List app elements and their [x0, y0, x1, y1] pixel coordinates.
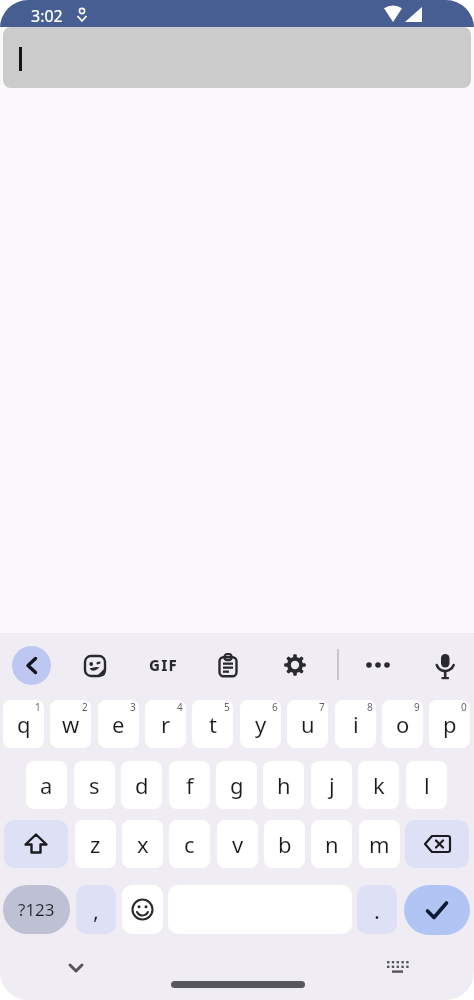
button[interactable] — [404, 885, 470, 935]
button[interactable] — [3, 27, 471, 88]
button[interactable] — [364, 653, 392, 677]
button[interactable]: f — [169, 761, 210, 809]
button[interactable]: p — [429, 700, 470, 748]
staticText: , — [93, 895, 99, 925]
staticText: 3 — [130, 700, 136, 714]
button[interactable]: i — [335, 700, 376, 748]
staticText: 7 — [319, 700, 325, 714]
button[interactable]: n — [311, 820, 352, 868]
staticText: z — [90, 829, 101, 859]
button[interactable]: o — [382, 700, 423, 748]
staticText: p — [443, 709, 457, 739]
button[interactable] — [58, 953, 94, 981]
button[interactable]: r — [145, 700, 186, 748]
staticText: GIF — [149, 655, 178, 675]
staticText: e — [112, 709, 125, 739]
staticText: v — [232, 829, 244, 859]
staticText: n — [325, 829, 339, 859]
button[interactable] — [216, 653, 240, 677]
staticText: 0 — [461, 700, 467, 714]
staticText: 1 — [35, 700, 41, 714]
button[interactable]: j — [311, 761, 352, 809]
button[interactable]: m — [359, 820, 400, 868]
staticText: t — [209, 709, 217, 739]
staticText: c — [184, 829, 195, 859]
button[interactable]: y — [240, 700, 281, 748]
staticText: 2 — [82, 700, 88, 714]
staticText: 3:02 — [31, 5, 63, 27]
staticText: 5 — [224, 700, 230, 714]
staticText: b — [278, 829, 292, 859]
button[interactable]: x — [122, 820, 163, 868]
staticText: 4 — [177, 700, 183, 714]
staticText: 6 — [272, 700, 278, 714]
staticText: y — [255, 709, 267, 739]
button[interactable]: d — [121, 761, 162, 809]
button[interactable]: z — [75, 820, 116, 868]
button[interactable]: q — [3, 700, 44, 748]
button[interactable]: l — [406, 761, 447, 809]
staticText: w — [62, 709, 80, 739]
staticText: r — [161, 709, 171, 739]
button[interactable]: b — [264, 820, 305, 868]
button[interactable]: . — [357, 885, 397, 934]
staticText: m — [369, 829, 390, 859]
staticText: d — [135, 770, 149, 800]
button[interactable] — [83, 653, 107, 677]
button[interactable]: GIF — [144, 653, 182, 677]
button[interactable]: s — [74, 761, 115, 809]
staticText: g — [230, 770, 244, 800]
button[interactable]: e — [98, 700, 139, 748]
button[interactable] — [405, 820, 469, 868]
staticText: l — [424, 770, 430, 800]
staticText: i — [353, 709, 359, 739]
staticText: u — [301, 709, 315, 739]
button[interactable]: , — [76, 885, 116, 934]
staticText: x — [137, 829, 149, 859]
staticText: 8 — [367, 700, 373, 714]
button[interactable]: g — [216, 761, 257, 809]
button[interactable]: v — [217, 820, 258, 868]
button[interactable] — [4, 820, 68, 868]
staticText: a — [40, 770, 53, 800]
button[interactable]: ?123 — [3, 885, 70, 934]
staticText: f — [186, 770, 194, 800]
staticText: 9 — [414, 700, 420, 714]
button[interactable] — [433, 652, 457, 680]
button[interactable]: k — [358, 761, 399, 809]
button[interactable]: c — [169, 820, 210, 868]
button[interactable]: u — [287, 700, 328, 748]
staticText: j — [329, 770, 335, 800]
button[interactable]: w — [50, 700, 91, 748]
staticText: o — [396, 709, 410, 739]
button[interactable]: a — [26, 761, 67, 809]
staticText: k — [373, 770, 385, 800]
button[interactable] — [384, 959, 412, 977]
staticText: ?123 — [18, 898, 55, 921]
button[interactable]: h — [263, 761, 304, 809]
button[interactable]: t — [192, 700, 233, 748]
staticText: . — [374, 895, 380, 925]
staticText: s — [89, 770, 100, 800]
button[interactable] — [12, 646, 51, 685]
staticText: h — [277, 770, 291, 800]
button[interactable] — [283, 653, 307, 677]
staticText: q — [17, 709, 31, 739]
button[interactable] — [122, 885, 163, 934]
